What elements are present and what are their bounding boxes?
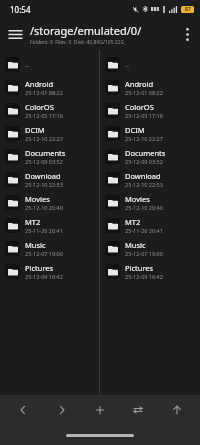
staticText: 25-12-05 17:16 — [25, 112, 63, 119]
staticText: 25-12-05 17:16 — [125, 112, 163, 119]
staticText: DCIM — [125, 125, 145, 135]
button[interactable]: Menu — [0, 19, 30, 49]
button[interactable]: Music — [100, 237, 200, 260]
staticText: Documents — [125, 148, 166, 158]
staticText: 25-12-09 16:42 — [25, 273, 63, 280]
button[interactable]: MT2 — [0, 214, 99, 237]
staticText: 25-12-07 19:00 — [25, 250, 63, 257]
staticText: 25-12-01 08:22 — [125, 89, 163, 96]
button[interactable]: Pictures — [100, 260, 200, 283]
staticText: .. — [25, 60, 29, 70]
button[interactable]: Download — [100, 168, 200, 191]
button[interactable]: Back — [8, 395, 38, 425]
staticText: 25-12-10 22:27 — [25, 135, 63, 142]
staticText: Pictures — [25, 263, 54, 273]
staticText: Folders: 9 Files: 0 Disk: 40.80G/105.22G — [30, 39, 125, 46]
button[interactable]: Movies — [0, 191, 99, 214]
button[interactable]: Movies — [100, 191, 200, 214]
staticText: 25-12-10 20:40 — [125, 204, 163, 211]
staticText: Download — [25, 171, 61, 181]
button[interactable]: Forward — [47, 395, 77, 425]
button[interactable]: .. — [0, 53, 99, 76]
button[interactable]: Transfer — [123, 395, 153, 425]
button[interactable]: Add — [85, 395, 115, 425]
staticText: /storage/emulated/0/ — [30, 23, 142, 38]
button[interactable]: Music — [0, 237, 99, 260]
staticText: Music — [25, 240, 46, 250]
staticText: Music — [125, 240, 146, 250]
staticText: 10:54 — [10, 4, 31, 15]
button[interactable]: Documents — [0, 145, 99, 168]
button[interactable]: ColorOS — [100, 99, 200, 122]
staticText: Movies — [25, 194, 50, 204]
button[interactable]: Android — [0, 76, 99, 99]
staticText: 25-12-09 16:42 — [125, 273, 163, 280]
staticText: 25-12-09 03:52 — [25, 158, 63, 165]
staticText: ColorOS — [125, 102, 154, 112]
staticText: 25-12-10 22:27 — [125, 135, 163, 142]
staticText: 25-12-10 22:53 — [25, 181, 63, 188]
staticText: Android — [25, 79, 54, 89]
button[interactable]: ColorOS — [0, 99, 99, 122]
staticText: 25-11-26 20:41 — [125, 227, 163, 234]
staticText: 25-11-26 20:41 — [25, 227, 63, 234]
staticText: 25-12-10 20:40 — [25, 204, 63, 211]
staticText: .. — [125, 60, 129, 70]
button[interactable]: DCIM — [0, 122, 99, 145]
button[interactable]: Up — [162, 395, 192, 425]
staticText: 25-12-10 22:53 — [125, 181, 163, 188]
button[interactable]: MT2 — [100, 214, 200, 237]
staticText: Pictures — [125, 263, 154, 273]
staticText: 25-12-01 08:22 — [25, 89, 63, 96]
staticText: 87 — [185, 6, 191, 13]
staticText: MT2 — [25, 217, 41, 227]
button[interactable]: Android — [100, 76, 200, 99]
button[interactable]: Documents — [100, 145, 200, 168]
staticText: ColorOS — [25, 102, 54, 112]
staticText: Documents — [25, 148, 66, 158]
staticText: MT2 — [125, 217, 141, 227]
button[interactable]: Pictures — [0, 260, 99, 283]
button[interactable]: DCIM — [100, 122, 200, 145]
staticText: Movies — [125, 194, 150, 204]
button[interactable]: Download — [0, 168, 99, 191]
staticText: Download — [125, 171, 161, 181]
staticText: DCIM — [25, 125, 45, 135]
button[interactable]: .. — [100, 53, 200, 76]
button[interactable]: More options — [174, 21, 200, 47]
staticText: 25-12-09 03:52 — [125, 158, 163, 165]
staticText: Android — [125, 79, 154, 89]
staticText: 25-12-07 19:00 — [125, 250, 163, 257]
